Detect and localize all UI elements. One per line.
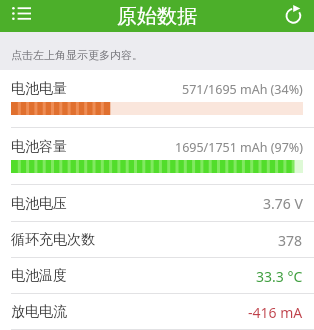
staticText: 3.76 V — [263, 194, 303, 213]
staticText: 电池电压 — [11, 195, 67, 213]
button[interactable]: 放电电流 — [0, 294, 314, 330]
staticText: 放电电流 — [11, 303, 67, 321]
staticText: 点击左上角显示更多内容。 — [11, 48, 143, 62]
button[interactable]: Refresh — [278, 0, 314, 32]
staticText: 电池容量 — [11, 138, 67, 156]
staticText: 电池温度 — [11, 267, 67, 285]
button[interactable]: 电池容量 — [0, 128, 314, 185]
staticText: -416 mA — [248, 303, 303, 322]
staticText: 33.3 °C — [256, 267, 303, 286]
staticText: 电池电量 — [11, 80, 67, 98]
staticText: 571/1695 mAh (34%) — [182, 81, 303, 98]
button[interactable]: 电池温度 — [0, 258, 314, 294]
button[interactable]: 电池电压 — [0, 185, 314, 222]
staticText: 循环充电次数 — [11, 231, 95, 249]
button[interactable]: Menu — [0, 0, 42, 32]
staticText: 378 — [278, 231, 303, 250]
staticText: 1695/1751 mAh (97%) — [175, 139, 303, 156]
button[interactable]: 电池电量 — [0, 70, 314, 128]
staticText: 原始数据 — [117, 4, 197, 29]
button[interactable]: 循环充电次数 — [0, 222, 314, 258]
